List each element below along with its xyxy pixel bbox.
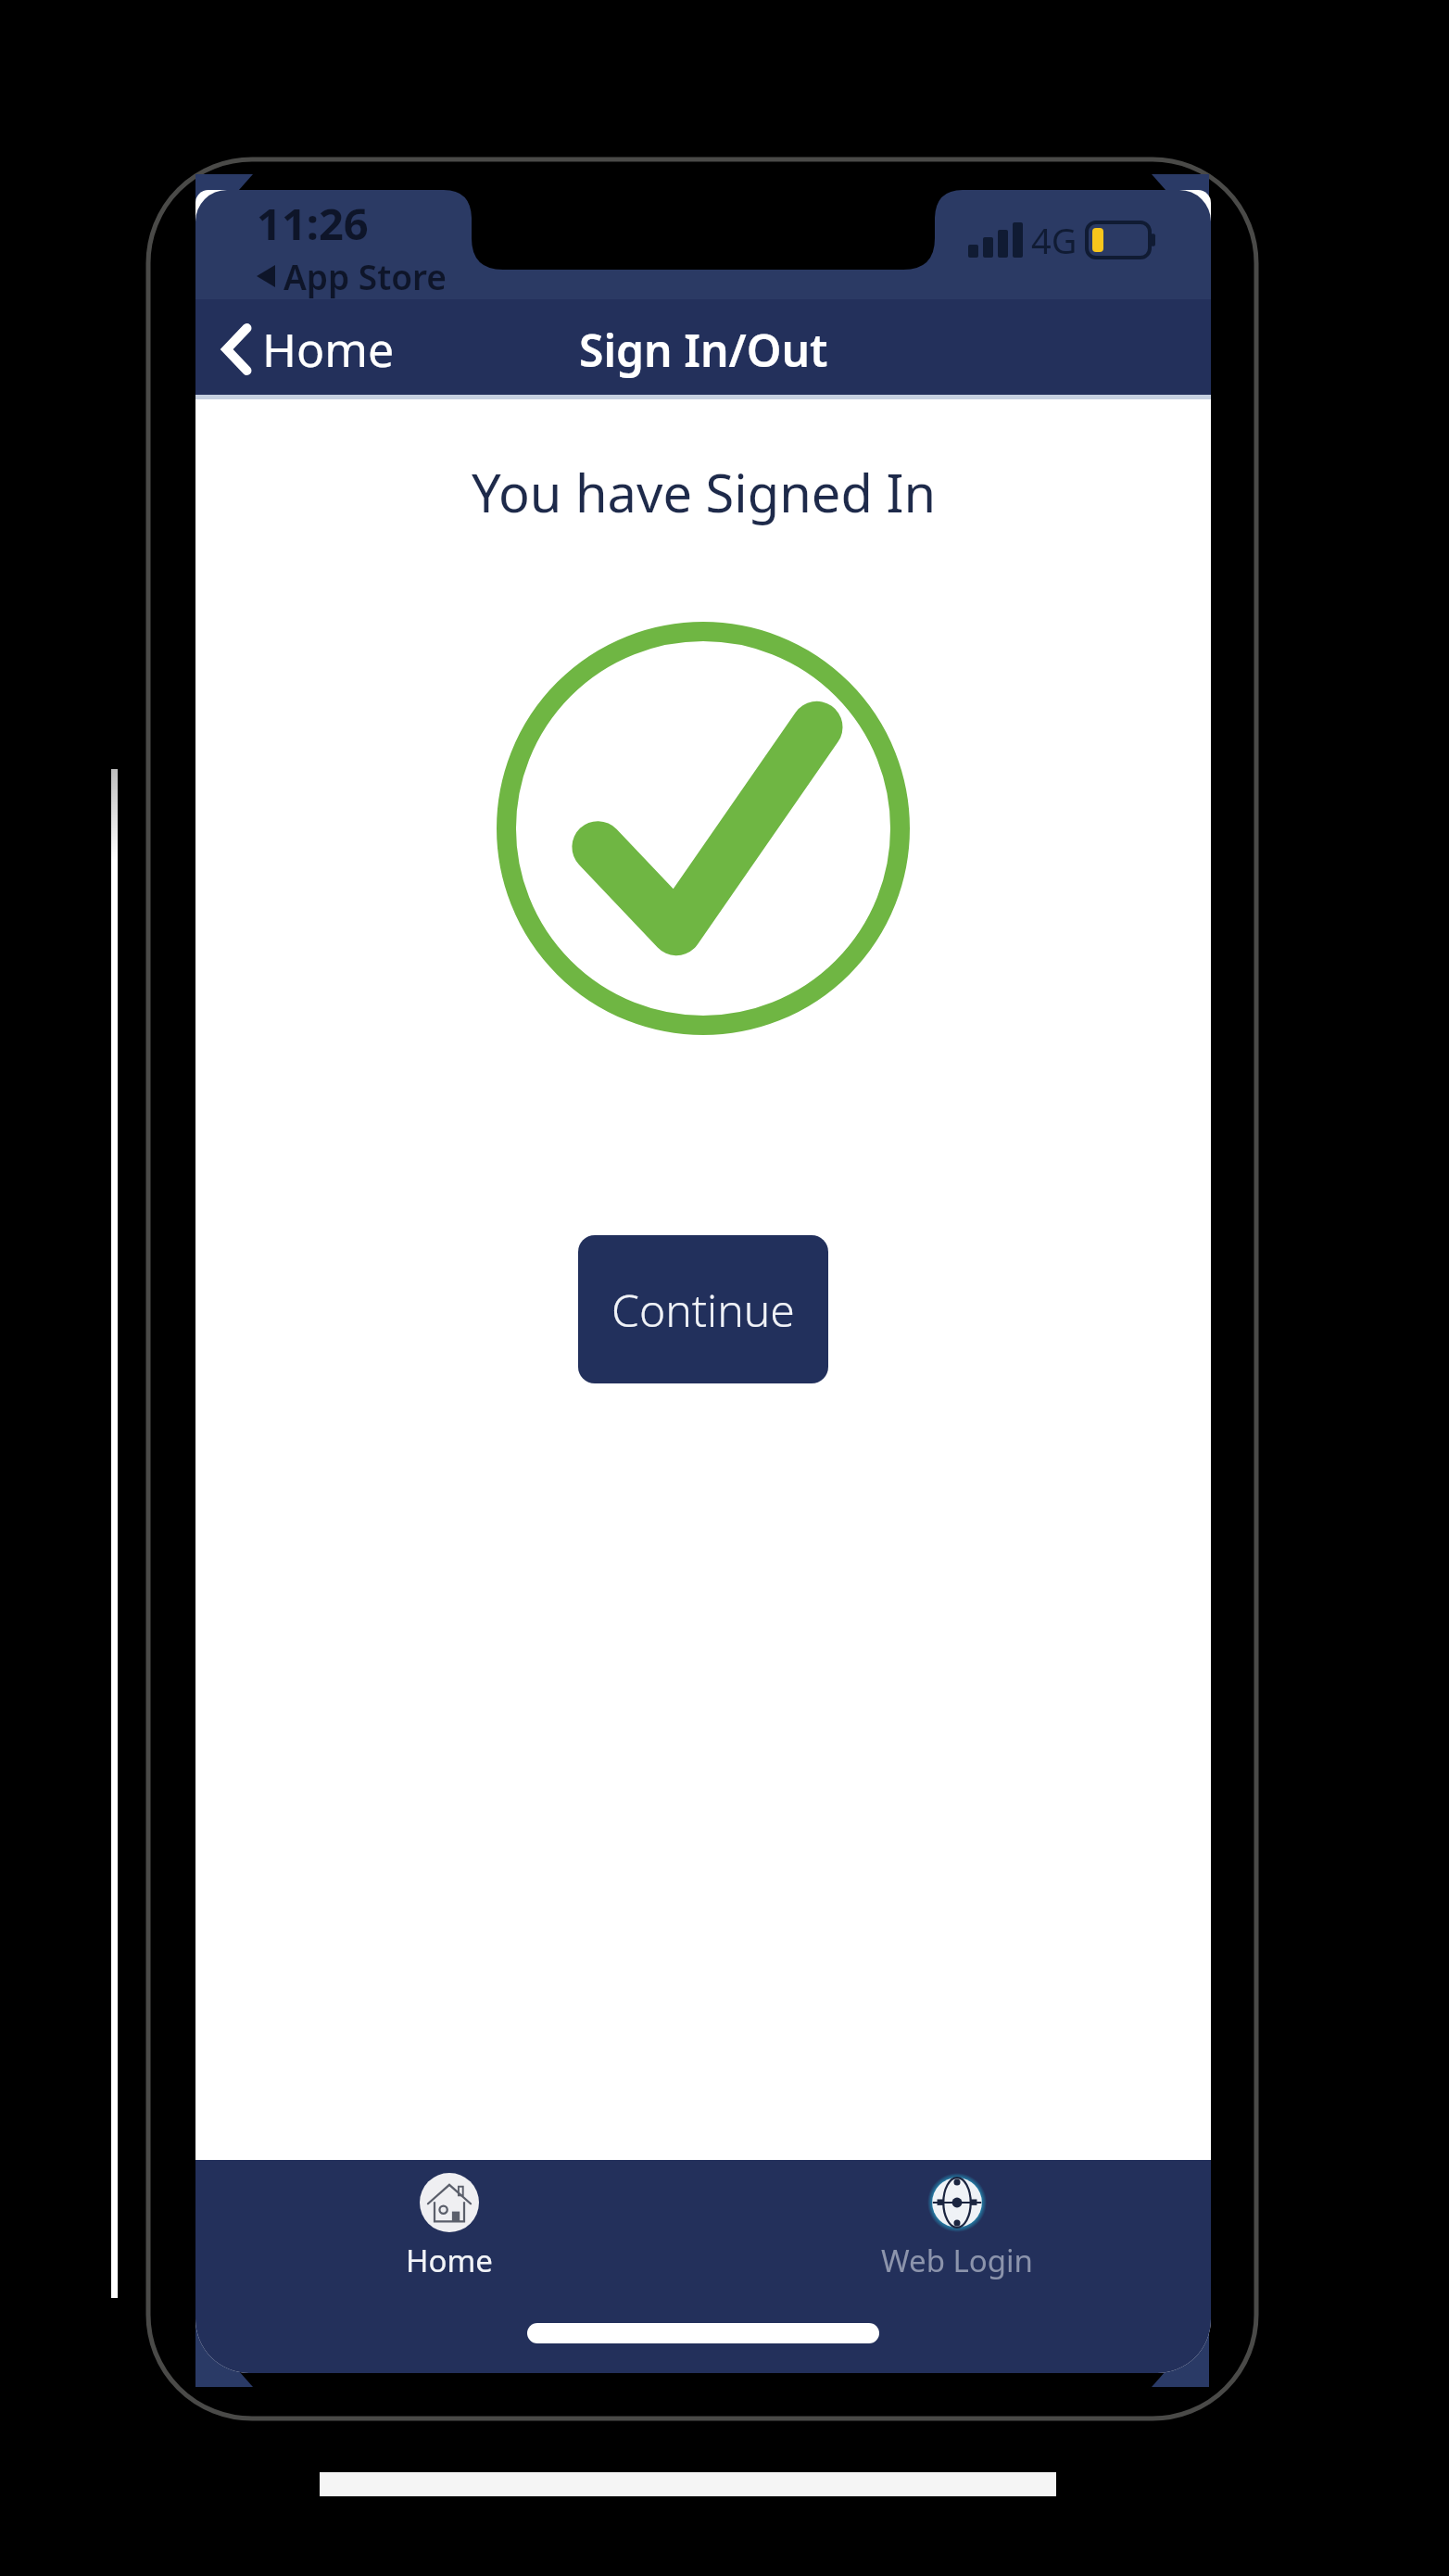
staticText: 11:26 [257,194,369,253]
staticText: Home [406,2240,493,2281]
staticText: 4G [1031,216,1077,264]
button[interactable]: Home [210,309,408,390]
staticText: Continue [611,1280,795,1340]
staticText: Web Login [881,2240,1033,2281]
staticText: Sign In/Out [579,320,828,380]
button[interactable]: Home [195,2160,703,2281]
staticText: Home [262,318,395,381]
button[interactable]: Web Login [703,2160,1211,2281]
staticText: You have Signed In [472,457,936,527]
button[interactable]: Continue [578,1235,828,1383]
staticText: App Store [283,253,447,299]
